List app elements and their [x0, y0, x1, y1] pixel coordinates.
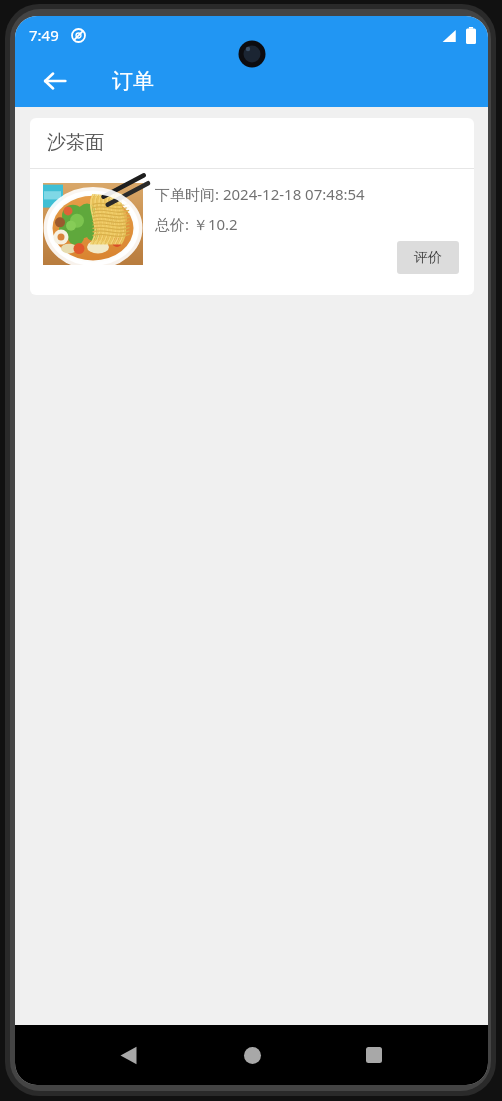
staticText: 沙茶面 — [47, 131, 104, 155]
staticText: 总价: ￥10.2 — [155, 214, 238, 234]
staticText: 订单 — [112, 68, 154, 94]
button[interactable]: Home — [232, 1035, 272, 1075]
button[interactable]: 沙茶面 — [30, 118, 474, 295]
button[interactable]: Back — [108, 1035, 148, 1075]
button[interactable]: Back — [35, 61, 75, 101]
staticText: 下单时间: 2024-12-18 07:48:54 — [155, 184, 365, 204]
button[interactable]: Recent apps — [354, 1035, 394, 1075]
staticText: 7:49 — [29, 25, 59, 45]
staticText: 评价 — [414, 249, 442, 267]
button[interactable]: 评价 — [397, 241, 459, 274]
